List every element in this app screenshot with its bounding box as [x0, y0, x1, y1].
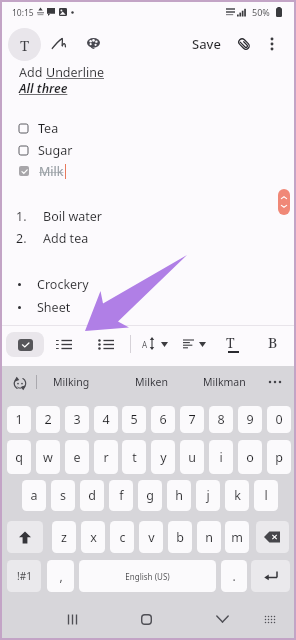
button[interactable]: Save [185, 27, 228, 61]
button[interactable]: p [267, 440, 291, 474]
staticText: h [175, 487, 183, 504]
staticText: Crockery [37, 276, 89, 293]
staticText: n [205, 529, 213, 546]
staticText: 9 [246, 411, 254, 428]
button[interactable]: Hide keyboard [210, 607, 234, 631]
staticText: 2. [16, 230, 27, 247]
button[interactable]: g [138, 480, 162, 511]
button[interactable]: !#1 [7, 560, 41, 592]
staticText: Underline [46, 64, 108, 81]
staticText: k [234, 487, 241, 504]
button[interactable]: Numbered list [53, 333, 75, 355]
button[interactable]: y [151, 440, 175, 474]
button[interactable]: Milk [14, 161, 66, 181]
button[interactable]: f [109, 480, 133, 511]
button[interactable]: Sugar [14, 140, 73, 160]
staticText: Add [19, 64, 46, 81]
staticText: 4 [102, 411, 110, 428]
button[interactable]: t [122, 440, 146, 474]
button[interactable]: . [221, 560, 247, 592]
button[interactable]: Text mode [8, 28, 41, 61]
button[interactable]: Home [134, 607, 158, 631]
button[interactable]: Sheet [14, 299, 71, 316]
button[interactable]: Underline [222, 330, 244, 358]
button[interactable]: Alignment [181, 333, 211, 355]
button[interactable]: c [110, 521, 134, 553]
staticText: Sugar [38, 142, 73, 159]
button[interactable]: 9 [238, 406, 262, 433]
staticText: t [132, 449, 137, 466]
button[interactable]: u [180, 440, 204, 474]
button[interactable]: l [254, 480, 278, 511]
button[interactable]: 0 [267, 406, 291, 433]
button[interactable]: Enter [251, 560, 290, 592]
button[interactable]: Bold [262, 330, 284, 358]
staticText: English (US) [125, 571, 170, 582]
button[interactable]: Milkman [195, 366, 254, 398]
button[interactable]: Bulleted list [95, 333, 117, 355]
staticText: w [43, 449, 53, 466]
staticText: c [119, 529, 126, 546]
button[interactable]: 4 [94, 406, 118, 433]
button[interactable]: m [225, 521, 249, 553]
staticText: p [275, 449, 283, 466]
button[interactable]: 7 [180, 406, 204, 433]
button[interactable]: Shift [7, 521, 43, 553]
button[interactable]: English (US) [79, 560, 216, 592]
staticText: Boil water [43, 208, 102, 225]
staticText: Tea [38, 120, 59, 137]
staticText: 2 [44, 411, 52, 428]
button[interactable]: h [167, 480, 191, 511]
staticText: b [176, 529, 184, 546]
button[interactable]: s [51, 480, 75, 511]
button[interactable]: n [197, 521, 221, 553]
staticText: q [15, 449, 23, 466]
staticText: 6 [159, 411, 167, 428]
button[interactable]: e [65, 440, 89, 474]
staticText: m [231, 529, 243, 546]
button[interactable]: Handwriting [47, 32, 71, 56]
button[interactable]: q [7, 440, 31, 474]
button[interactable]: 2 [36, 406, 60, 433]
button[interactable]: Scroll [278, 189, 290, 215]
button[interactable]: b [168, 521, 192, 553]
button[interactable]: j [196, 480, 220, 511]
staticText: a [30, 487, 38, 504]
button[interactable]: 1. [16, 208, 102, 225]
button[interactable]: Emoji and sticker suggestions [8, 372, 31, 395]
button[interactable]: w [36, 440, 60, 474]
button[interactable]: Attach [232, 32, 256, 56]
button[interactable]: , [47, 560, 74, 592]
button[interactable]: Milken [127, 366, 176, 398]
button[interactable]: k [225, 480, 249, 511]
button[interactable]: More options [260, 32, 284, 56]
staticText: 1. [16, 208, 27, 225]
button[interactable]: Backspace [256, 521, 289, 553]
button[interactable]: r [94, 440, 118, 474]
button[interactable]: Colour palette [81, 32, 105, 56]
button[interactable]: 2. [16, 230, 89, 247]
staticText: 8 [217, 411, 225, 428]
button[interactable]: d [80, 480, 104, 511]
button[interactable]: Milking [45, 366, 98, 398]
button[interactable]: 5 [122, 406, 146, 433]
button[interactable]: v [139, 521, 163, 553]
button[interactable]: z [52, 521, 76, 553]
button[interactable]: More suggestions [264, 371, 286, 393]
staticText: 3 [73, 411, 81, 428]
button[interactable]: Recent apps [60, 607, 84, 631]
button[interactable]: Change keyboard [258, 607, 282, 631]
button[interactable]: o [238, 440, 262, 474]
button[interactable]: Checklist [6, 332, 44, 357]
button[interactable]: 6 [151, 406, 175, 433]
button[interactable]: 8 [209, 406, 233, 433]
button[interactable]: 1 [7, 406, 31, 433]
staticText: 50% [252, 6, 270, 18]
button[interactable]: x [81, 521, 105, 553]
button[interactable]: Text size [139, 333, 173, 355]
button[interactable]: Tea [14, 118, 59, 138]
button[interactable]: 3 [65, 406, 89, 433]
button[interactable]: a [22, 480, 46, 511]
button[interactable]: i [209, 440, 233, 474]
button[interactable]: Crockery [14, 276, 89, 293]
